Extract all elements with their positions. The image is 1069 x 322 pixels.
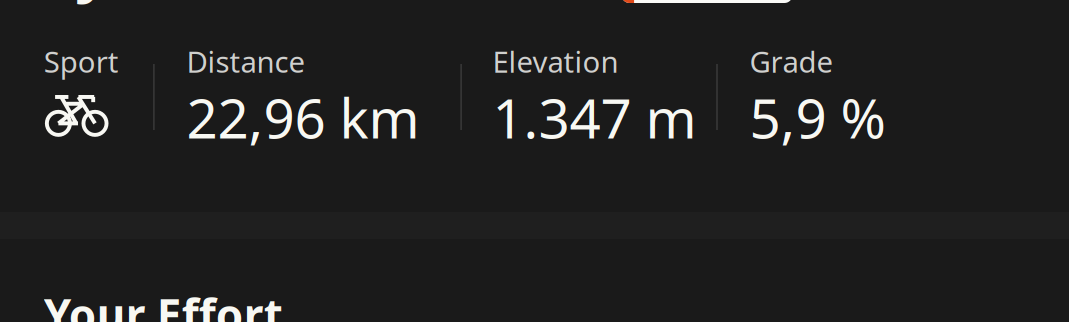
staticText: 5,9 % xyxy=(749,81,885,154)
staticText: 22,96 km xyxy=(187,81,420,154)
staticText: Elevation xyxy=(492,42,618,81)
staticText: Sport xyxy=(44,42,119,81)
staticText: 1.347 m xyxy=(492,81,696,154)
button[interactable]: Star segment xyxy=(621,0,792,3)
staticText: Grade xyxy=(749,42,833,81)
staticText: Distance xyxy=(187,42,306,81)
staticText: Lyckebo Hill xyxy=(41,0,411,6)
staticText: Your Effort xyxy=(44,285,283,322)
